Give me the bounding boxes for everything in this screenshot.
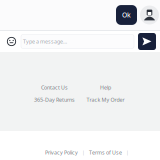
staticText: Help (100, 84, 111, 91)
staticText: Contact Us (41, 84, 68, 91)
button[interactable]: Track My Order (86, 96, 124, 103)
button[interactable]: Type a message… (21, 34, 134, 48)
staticText: Terms of Use (89, 149, 122, 156)
staticText: | (126, 149, 129, 156)
staticText: Ok (122, 11, 131, 19)
button[interactable]: Contact Us (41, 84, 68, 91)
staticText: Track My Order (86, 96, 124, 103)
button[interactable]: Emoji (2, 31, 21, 52)
button[interactable]: Privacy Policy (45, 149, 78, 156)
button[interactable]: Send (138, 33, 156, 50)
staticText: 365-Day Returns (34, 96, 75, 103)
button[interactable]: 365-Day Returns (34, 96, 75, 103)
staticText: Type a message… (23, 38, 67, 45)
button[interactable]: Terms of Use (89, 149, 122, 156)
staticText: Privacy Policy (45, 149, 78, 156)
button[interactable]: Help (100, 84, 111, 91)
staticText: | (82, 149, 85, 156)
